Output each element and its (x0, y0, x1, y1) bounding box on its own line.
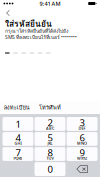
staticText: กรุณาใส่รหัสยืนยันที่ได้ส่งไปยัง SMS ที่… (5, 27, 77, 41)
button[interactable]: โทรศัพท์ (33, 101, 67, 114)
button[interactable]: 6 (67, 132, 97, 146)
staticText: MNO (77, 140, 87, 146)
button[interactable]: ลงทะเบียน (0, 101, 33, 114)
staticText: PQRS (13, 156, 22, 161)
staticText: 9 (80, 146, 85, 159)
staticText: โทรศัพท์ (39, 103, 61, 112)
staticText: 4 (15, 131, 20, 144)
staticText: 5 (47, 131, 52, 144)
staticText: DEF (79, 125, 86, 131)
staticText: 6 (80, 131, 85, 144)
staticText: 7 (15, 146, 20, 159)
staticText: 8 (47, 146, 52, 159)
button[interactable]: 8 (35, 147, 65, 161)
staticText: 2 (47, 116, 52, 129)
staticText: 1 (15, 117, 20, 130)
button[interactable]: 9 (67, 147, 97, 161)
staticText: TUV (46, 156, 53, 161)
button[interactable]: 1 (2, 117, 33, 131)
staticText: ABC (46, 125, 54, 131)
staticText: 3 (80, 116, 85, 129)
button[interactable]: 2 (35, 117, 65, 131)
button[interactable]: Back (1, 7, 14, 19)
staticText: 0 (47, 162, 52, 176)
staticText: JKL (47, 140, 52, 146)
staticText: ลงทะเบียน (4, 103, 30, 112)
staticText: WXYZ (77, 156, 87, 161)
button[interactable]: 4 (2, 132, 33, 146)
staticText: 9:41 AM (39, 0, 60, 7)
button[interactable]: 3 (67, 117, 97, 131)
button[interactable]: 0 (35, 162, 65, 176)
button[interactable]: Delete (67, 162, 97, 176)
staticText: GHI (14, 140, 21, 146)
button[interactable]: 5 (35, 132, 65, 146)
staticText: ใส่รหัสยืนยัน (5, 17, 52, 31)
button[interactable]: 7 (2, 147, 33, 161)
